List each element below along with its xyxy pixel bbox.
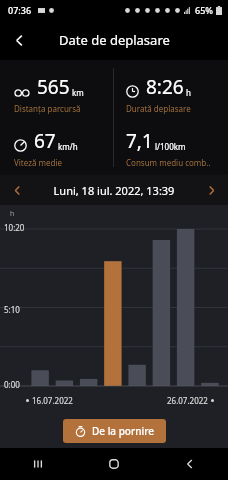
staticText: 07:36 xyxy=(8,4,32,16)
staticText: Date de deplasare xyxy=(59,31,170,49)
button[interactable]: Previous day xyxy=(0,175,34,205)
staticText: km xyxy=(72,87,84,98)
button[interactable]: Home xyxy=(76,448,152,480)
staticText: h xyxy=(10,209,15,219)
staticText: h xyxy=(186,87,191,98)
staticText: 67 xyxy=(34,128,56,154)
staticText: 10:20 xyxy=(4,222,25,233)
staticText: Distanța parcursă xyxy=(14,103,81,114)
staticText: Luni, 18 iul. 2022, 13:39 xyxy=(34,183,194,198)
staticText: 26.07.2022 xyxy=(167,395,208,406)
button[interactable]: De la pornire xyxy=(63,419,166,443)
button[interactable]: Back xyxy=(152,448,228,480)
button[interactable]: Back xyxy=(0,21,38,59)
staticText: 16.07.2022 xyxy=(32,395,73,406)
staticText: km/h xyxy=(58,141,78,152)
staticText: 8:26 xyxy=(146,74,184,100)
button[interactable]: Recent apps xyxy=(0,448,76,480)
staticText: Durată deplasare xyxy=(126,103,191,114)
staticText: 65% xyxy=(195,4,213,16)
staticText: Viteză medie xyxy=(14,157,62,168)
button[interactable]: Next day xyxy=(194,175,228,205)
staticText: 565 xyxy=(37,74,70,100)
staticText: 0:00 xyxy=(4,379,20,390)
staticText: De la pornire xyxy=(92,424,154,438)
staticText: Consum mediu comb.. xyxy=(126,157,211,168)
staticText: 7,1 xyxy=(126,128,153,154)
staticText: 5:10 xyxy=(4,304,20,315)
staticText: l/100km xyxy=(155,141,186,152)
